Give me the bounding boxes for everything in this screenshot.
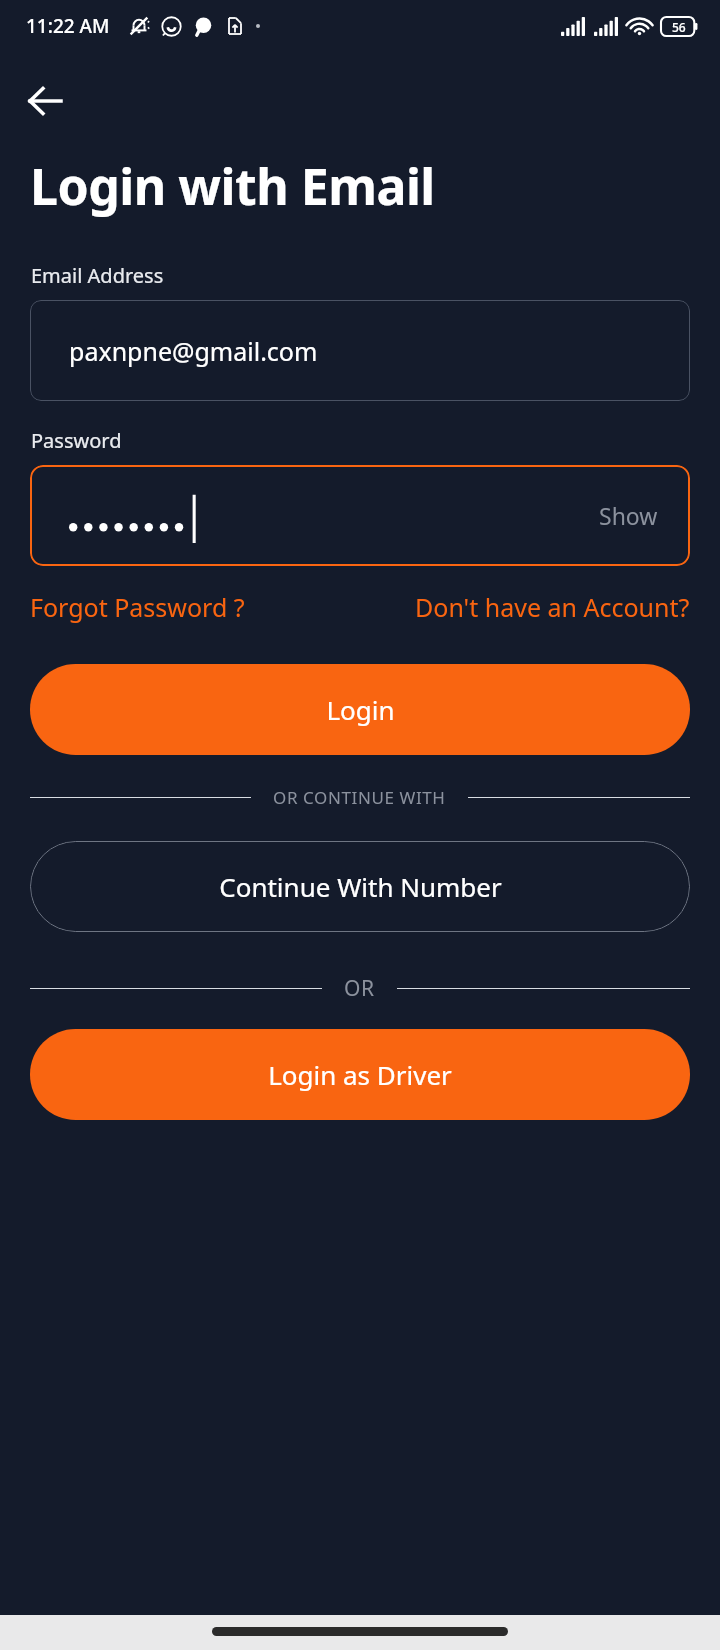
staticText: Login bbox=[326, 692, 395, 727]
staticText: OR CONTINUE WITH bbox=[273, 786, 446, 809]
staticText: Login with Email bbox=[30, 152, 435, 220]
button[interactable]: Don't have an Account? bbox=[415, 590, 690, 624]
staticText: paxnpne@gmail.com bbox=[69, 334, 318, 368]
staticText: Email Address bbox=[31, 262, 164, 289]
button[interactable]: Show bbox=[30, 465, 690, 566]
staticText: Login as Driver bbox=[268, 1057, 452, 1092]
button[interactable]: Continue With Number bbox=[30, 841, 690, 932]
button[interactable]: Forgot Password ? bbox=[30, 590, 245, 624]
staticText: Password bbox=[31, 427, 122, 454]
staticText: 11:22 AM bbox=[26, 13, 110, 39]
button[interactable]: Login bbox=[30, 664, 690, 755]
button[interactable]: Back bbox=[16, 72, 74, 130]
button[interactable]: Login as Driver bbox=[30, 1029, 690, 1120]
staticText: OR bbox=[344, 974, 375, 1003]
button[interactable]: paxnpne@gmail.com bbox=[30, 300, 690, 401]
staticText: Continue With Number bbox=[219, 869, 502, 904]
button[interactable]: Show bbox=[599, 500, 658, 531]
staticText: 56 bbox=[672, 19, 686, 35]
